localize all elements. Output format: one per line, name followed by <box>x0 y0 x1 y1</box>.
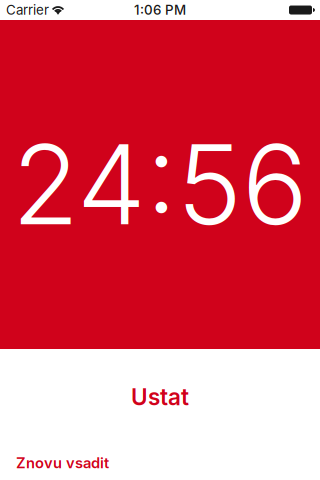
staticText: 24:56 <box>12 118 308 251</box>
staticText: 1:06 PM <box>134 2 186 18</box>
button[interactable]: Znovu vsadit <box>0 446 320 480</box>
staticText: Znovu vsadit <box>16 454 109 472</box>
button[interactable]: Ustat <box>0 375 320 419</box>
staticText: Ustat <box>131 383 189 411</box>
staticText: Carrier <box>6 2 49 18</box>
